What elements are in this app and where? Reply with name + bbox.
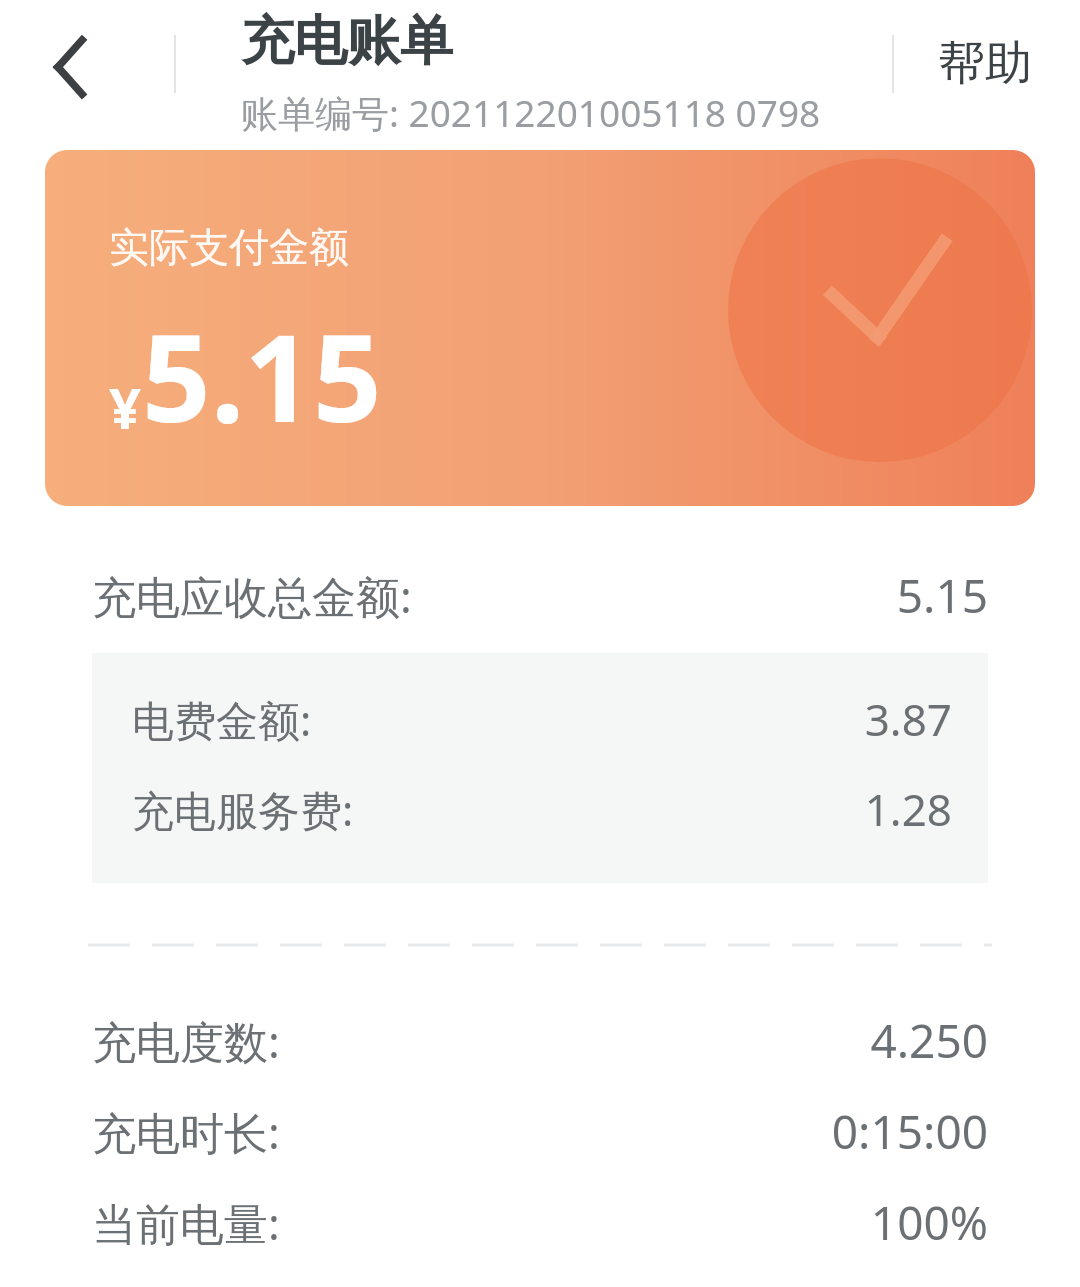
button[interactable]: Back: [18, 12, 122, 116]
button[interactable]: 电费金额:: [92, 689, 988, 749]
staticText: 4.250: [870, 1009, 988, 1072]
staticText: ¥: [109, 369, 142, 445]
button[interactable]: 充电应收总金额:: [0, 564, 1080, 627]
button[interactable]: 帮助: [920, 18, 1050, 109]
button[interactable]: 当前电量:: [0, 1191, 1080, 1254]
staticText: 电费金额:: [132, 691, 312, 748]
staticText: 充电时长:: [92, 1102, 280, 1162]
button[interactable]: 充电度数:: [0, 1009, 1080, 1072]
staticText: 帮助: [938, 34, 1032, 93]
button[interactable]: 充电时长:: [0, 1100, 1080, 1163]
button[interactable]: 充电服务费:: [92, 779, 988, 839]
staticText: 0:15:00: [831, 1100, 988, 1163]
staticText: 充电账单: [241, 8, 453, 75]
staticText: 账单编号: 202112201005118 0798: [241, 87, 821, 138]
staticText: 实际支付金额: [109, 222, 349, 272]
staticText: 1.28: [864, 779, 952, 839]
staticText: 3.87: [864, 689, 952, 749]
staticText: 100%: [870, 1191, 988, 1254]
staticText: 充电应收总金额:: [92, 566, 412, 626]
button[interactable]: 实际支付金额: [45, 150, 1035, 506]
staticText: 充电服务费:: [132, 781, 354, 838]
staticText: 5.15: [142, 294, 382, 457]
staticText: 充电度数:: [92, 1011, 280, 1071]
staticText: 当前电量:: [92, 1193, 280, 1253]
staticText: 5.15: [896, 564, 988, 627]
